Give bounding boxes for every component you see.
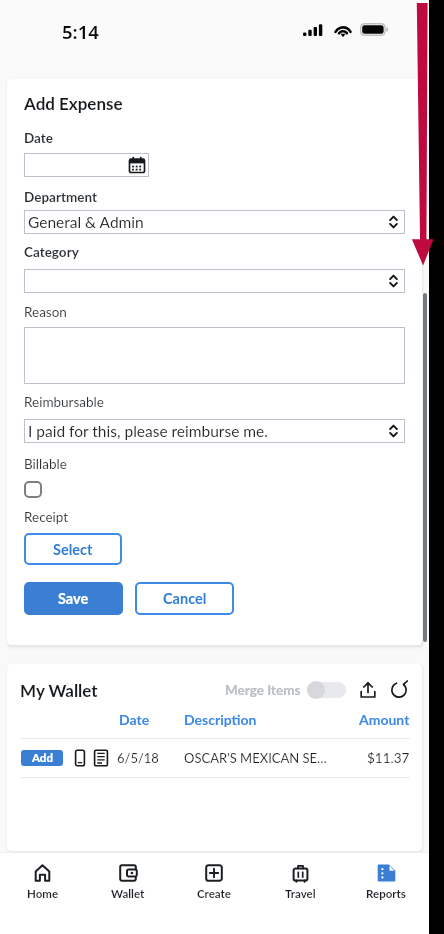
button[interactable]: I paid for this, please reimburse me. <box>24 419 405 443</box>
button[interactable]: Upload receipt <box>358 680 378 700</box>
button[interactable]: Select <box>24 533 122 565</box>
button[interactable]: Add <box>20 739 410 777</box>
staticText: Reimbursable <box>24 394 104 410</box>
staticText: OSCAR'S MEXICAN SE… <box>184 750 327 766</box>
button[interactable]: Select option <box>24 269 405 293</box>
button[interactable]: Billable checkbox <box>24 481 42 498</box>
staticText: Description <box>184 711 257 728</box>
staticText: Billable <box>24 456 67 472</box>
staticText: General & Admin <box>28 213 144 232</box>
button[interactable]: Home <box>0 853 85 934</box>
button[interactable]: Create <box>171 853 257 934</box>
staticText: Add Expense <box>24 93 123 113</box>
staticText: My Wallet <box>20 680 98 700</box>
button[interactable]: Reason <box>24 327 405 384</box>
staticText: Department <box>24 189 98 205</box>
staticText: Add <box>32 751 53 765</box>
staticText: Date <box>24 130 54 146</box>
staticText: $11.37 <box>367 750 410 766</box>
staticText: Save <box>58 590 89 607</box>
staticText: 6/5/18 <box>117 750 159 766</box>
staticText: Reports <box>366 887 406 901</box>
staticText: Date <box>119 711 150 728</box>
staticText: Reason <box>24 304 67 320</box>
staticText: Amount <box>359 711 410 728</box>
button[interactable]: Wallet <box>85 853 171 934</box>
button[interactable]: Save <box>24 582 123 615</box>
button[interactable]: Add <box>21 750 63 766</box>
button[interactable]: Cancel <box>135 582 234 615</box>
staticText: Home <box>27 887 59 901</box>
staticText: Travel <box>285 887 316 901</box>
staticText: I paid for this, please reimburse me. <box>28 422 268 441</box>
button[interactable]: Merge items toggle <box>307 681 346 699</box>
staticText: Select <box>53 541 93 558</box>
staticText: Wallet <box>111 887 145 901</box>
button[interactable]: Travel <box>257 853 343 934</box>
staticText: Merge Items <box>225 682 301 698</box>
staticText: 5:14 <box>62 19 99 44</box>
button[interactable]: Refresh <box>389 680 409 700</box>
button[interactable]: General & Admin <box>24 210 405 234</box>
button[interactable]: Pick date <box>24 153 149 177</box>
staticText: Create <box>197 887 231 901</box>
staticText: Receipt <box>24 509 69 525</box>
staticText: Cancel <box>163 590 207 607</box>
staticText: Category <box>24 244 79 260</box>
button[interactable]: Reports <box>343 853 429 934</box>
